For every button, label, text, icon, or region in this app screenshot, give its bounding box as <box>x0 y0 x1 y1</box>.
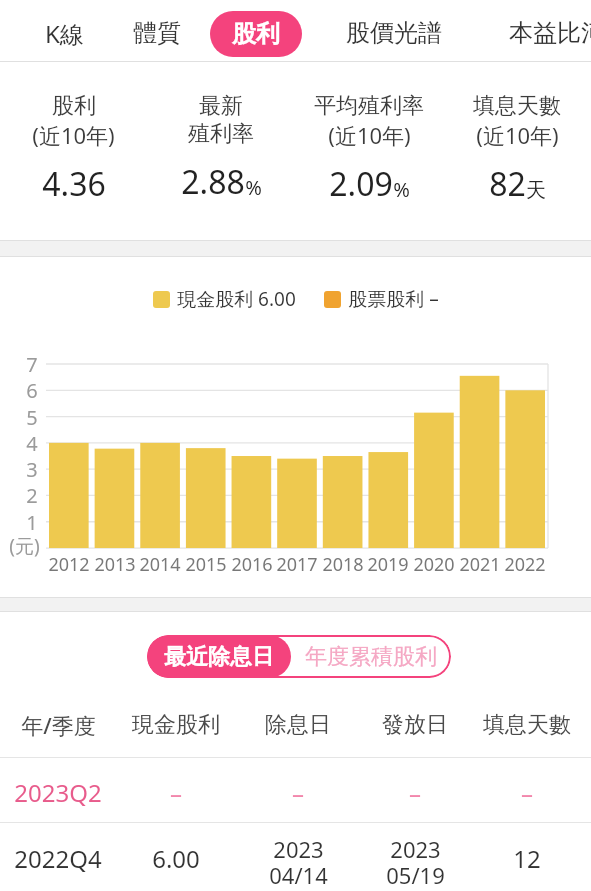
staticText: – <box>521 776 533 806</box>
staticText: 5 <box>26 404 38 430</box>
staticText: 2.09 <box>329 162 393 206</box>
staticText: – <box>409 776 421 806</box>
staticText: 2021 <box>459 552 501 576</box>
staticText: 2016 <box>231 552 273 576</box>
staticText: 年/季度 <box>21 710 96 740</box>
staticText: 4.36 <box>42 162 106 206</box>
staticText: 填息天數 <box>483 711 571 739</box>
staticText: 發放日 <box>382 711 448 739</box>
staticText: (元) <box>9 533 40 559</box>
staticText: 天 <box>526 178 546 203</box>
staticText: 體質 <box>133 18 181 48</box>
button[interactable]: 年度累積股利 <box>291 635 451 678</box>
staticText: 股票股利 – <box>348 286 439 312</box>
staticText: (近10年) <box>476 120 559 150</box>
staticText: 1 <box>26 509 38 535</box>
button[interactable]: 最近除息日 <box>147 635 291 678</box>
button[interactable]: 股價光譜 <box>330 12 458 54</box>
staticText: – <box>292 776 304 806</box>
staticText: 股利 <box>52 92 96 120</box>
staticText: 最新 <box>199 92 243 120</box>
staticText: 6 <box>26 377 38 403</box>
staticText: 最近除息日 <box>164 643 274 671</box>
staticText: 7 <box>26 351 38 377</box>
staticText: 2023 05/19 <box>386 834 445 891</box>
staticText: 2022Q4 <box>14 842 102 875</box>
staticText: 2.88 <box>181 160 245 204</box>
staticText: 3 <box>26 456 38 482</box>
staticText: 除息日 <box>265 711 331 739</box>
staticText: 6.00 <box>152 842 200 875</box>
staticText: 4 <box>26 430 38 456</box>
staticText: 12 <box>513 842 541 875</box>
staticText: 股利 <box>232 19 280 49</box>
staticText: % <box>393 176 410 203</box>
staticText: 2012 <box>48 552 90 576</box>
staticText: 現金股利 <box>132 711 220 739</box>
staticText: 2020 <box>413 552 455 576</box>
staticText: (近10年) <box>328 120 411 150</box>
staticText: – <box>170 776 182 806</box>
button[interactable]: 股利 <box>210 11 302 57</box>
staticText: 2015 <box>185 552 227 576</box>
staticText: 82 <box>489 162 526 206</box>
staticText: 2023Q2 <box>14 776 102 806</box>
staticText: 年度累積股利 <box>305 643 437 671</box>
staticText: 2017 <box>276 552 318 576</box>
staticText: 2 <box>26 482 38 508</box>
staticText: 2022 <box>504 552 546 576</box>
staticText: 現金股利 6.00 <box>177 286 296 312</box>
staticText: 本益比河流圖 <box>509 18 591 48</box>
button[interactable]: 體質 <box>122 12 192 54</box>
staticText: 2019 <box>367 552 409 576</box>
staticText: (近10年) <box>32 120 115 150</box>
staticText: 2018 <box>322 552 364 576</box>
button[interactable]: 本益比河流圖 <box>509 12 591 54</box>
staticText: 殖利率 <box>188 120 254 148</box>
staticText: 平均殖利率 <box>314 92 424 120</box>
staticText: 2023 04/14 <box>269 834 328 891</box>
staticText: 2014 <box>139 552 181 576</box>
staticText: 股價光譜 <box>346 18 442 48</box>
staticText: K線 <box>45 17 84 50</box>
staticText: 2013 <box>94 552 136 576</box>
staticText: % <box>245 174 262 201</box>
button[interactable]: K線 <box>29 12 99 54</box>
staticText: 填息天數 <box>473 92 561 120</box>
